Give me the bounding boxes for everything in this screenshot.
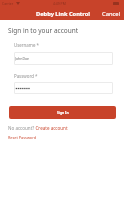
staticText: 4:49 PM	[53, 1, 66, 6]
button[interactable]	[14, 82, 113, 94]
button[interactable]: Reset Password	[8, 135, 36, 140]
staticText: Reset Password	[8, 135, 36, 140]
staticText: Cancel	[102, 10, 121, 18]
staticText: JohnDoe	[15, 56, 30, 61]
staticText: Sign in to your account	[8, 26, 79, 35]
button[interactable]: Cancel	[98, 8, 124, 20]
button[interactable]: JohnDoe	[14, 52, 113, 65]
staticText: Password *	[14, 73, 38, 79]
staticText: Debby Link Control	[36, 10, 90, 18]
staticText: Username *	[14, 42, 39, 48]
button[interactable]: Sign In	[9, 106, 116, 119]
staticText: No account? Create account	[8, 125, 68, 131]
staticText: Carrier	[2, 1, 14, 6]
staticText: Sign In	[57, 110, 69, 115]
button[interactable]: No account? Create account	[8, 125, 68, 131]
